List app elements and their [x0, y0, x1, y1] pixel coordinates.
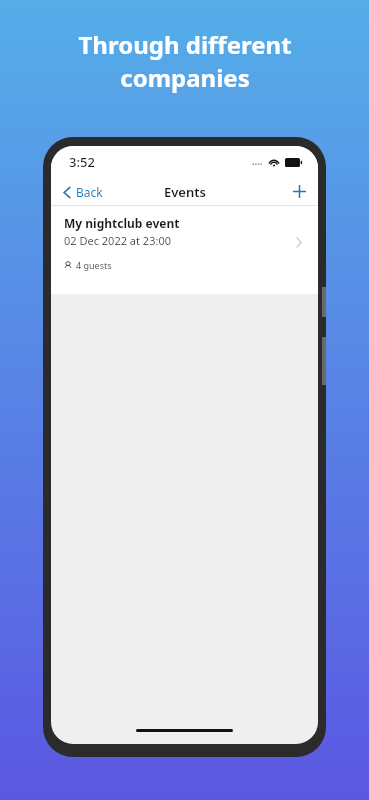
button[interactable]: Back: [51, 180, 111, 204]
staticText: 02 Dec 2022 at 23:00: [64, 233, 171, 248]
button[interactable]: Add event: [281, 181, 318, 202]
staticText: Events: [164, 183, 206, 201]
staticText: companies: [120, 61, 250, 94]
staticText: 4 guests: [76, 259, 112, 271]
button[interactable]: My nightclub event: [51, 206, 318, 278]
staticText: Back: [76, 184, 103, 200]
staticText: My nightclub event: [64, 215, 180, 231]
staticText: Through different: [78, 28, 292, 61]
staticText: 3:52: [69, 153, 95, 171]
